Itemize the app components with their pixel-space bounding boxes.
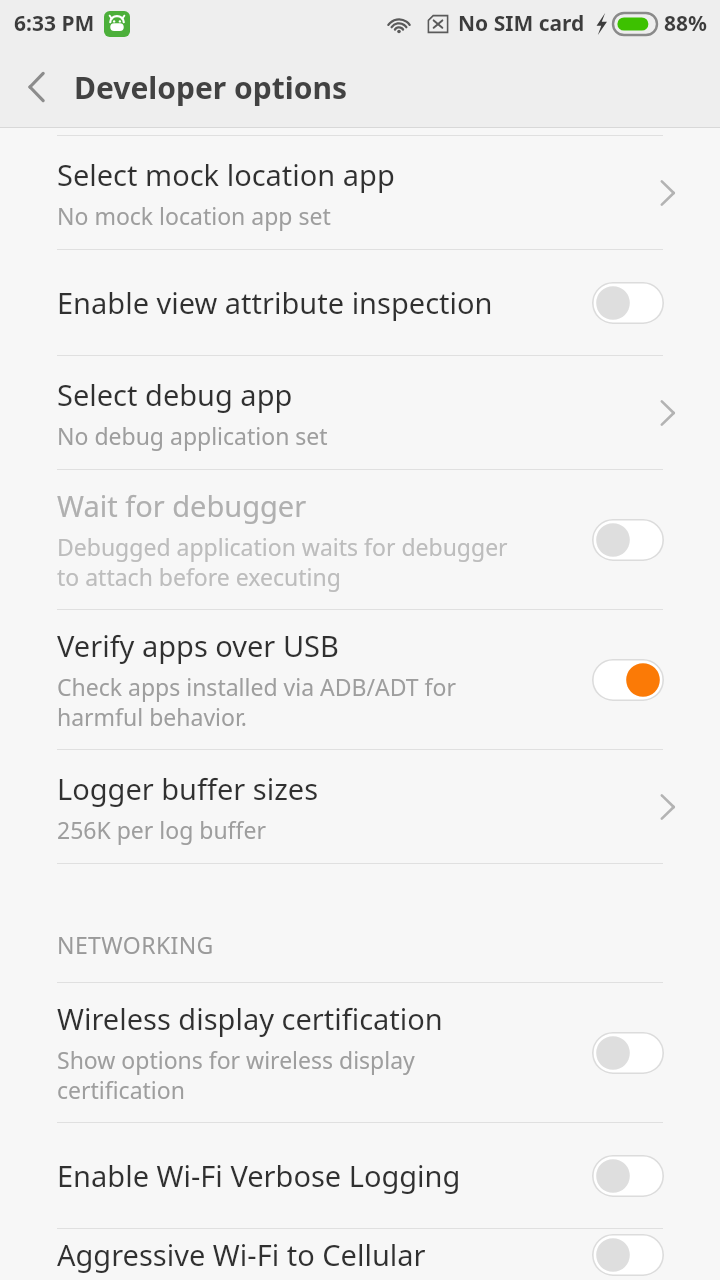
button[interactable]: Select debug app bbox=[0, 356, 720, 469]
button[interactable]: Off bbox=[592, 282, 664, 324]
button[interactable]: Verify apps over USB bbox=[0, 610, 720, 749]
staticText: Developer options bbox=[74, 67, 348, 108]
staticText: Enable Wi-Fi Verbose Logging bbox=[57, 1156, 461, 1195]
staticText: Show options for wireless display certif… bbox=[57, 1044, 415, 1106]
button[interactable]: Wireless display certification bbox=[0, 983, 720, 1122]
button[interactable]: Off bbox=[592, 1155, 664, 1197]
staticText: Wireless display certification bbox=[57, 999, 443, 1038]
staticText: Wait for debugger bbox=[57, 486, 307, 525]
staticText: Debugged application waits for debugger … bbox=[57, 531, 508, 593]
staticText: 88% bbox=[664, 9, 707, 38]
button[interactable]: Off bbox=[592, 519, 664, 561]
button[interactable]: Off bbox=[592, 1234, 664, 1276]
staticText: No mock location app set bbox=[57, 200, 331, 231]
staticText: 6:33 PM bbox=[14, 9, 95, 38]
staticText: Aggressive Wi-Fi to Cellular bbox=[57, 1235, 426, 1274]
button[interactable]: Aggressive Wi-Fi to Cellular bbox=[0, 1229, 720, 1280]
button[interactable]: Enable view attribute inspection bbox=[0, 250, 720, 355]
staticText: NETWORKING bbox=[57, 929, 214, 960]
button[interactable]: Back bbox=[0, 47, 74, 127]
staticText: No SIM card bbox=[458, 9, 585, 38]
button[interactable]: On bbox=[592, 659, 664, 701]
staticText: Select debug app bbox=[57, 375, 293, 414]
button[interactable]: Select mock location app bbox=[0, 136, 720, 249]
staticText: Verify apps over USB bbox=[57, 626, 339, 665]
staticText: Check apps installed via ADB/ADT for har… bbox=[57, 671, 456, 733]
button[interactable]: Logger buffer sizes bbox=[0, 750, 720, 863]
button[interactable]: Off bbox=[592, 1032, 664, 1074]
button[interactable]: Enable Wi-Fi Verbose Logging bbox=[0, 1123, 720, 1228]
staticText: 256K per log buffer bbox=[57, 814, 266, 845]
button[interactable]: Wait for debugger bbox=[0, 470, 720, 609]
staticText: No debug application set bbox=[57, 420, 328, 451]
staticText: Enable view attribute inspection bbox=[57, 283, 493, 322]
staticText: Logger buffer sizes bbox=[57, 769, 319, 808]
staticText: Select mock location app bbox=[57, 155, 395, 194]
